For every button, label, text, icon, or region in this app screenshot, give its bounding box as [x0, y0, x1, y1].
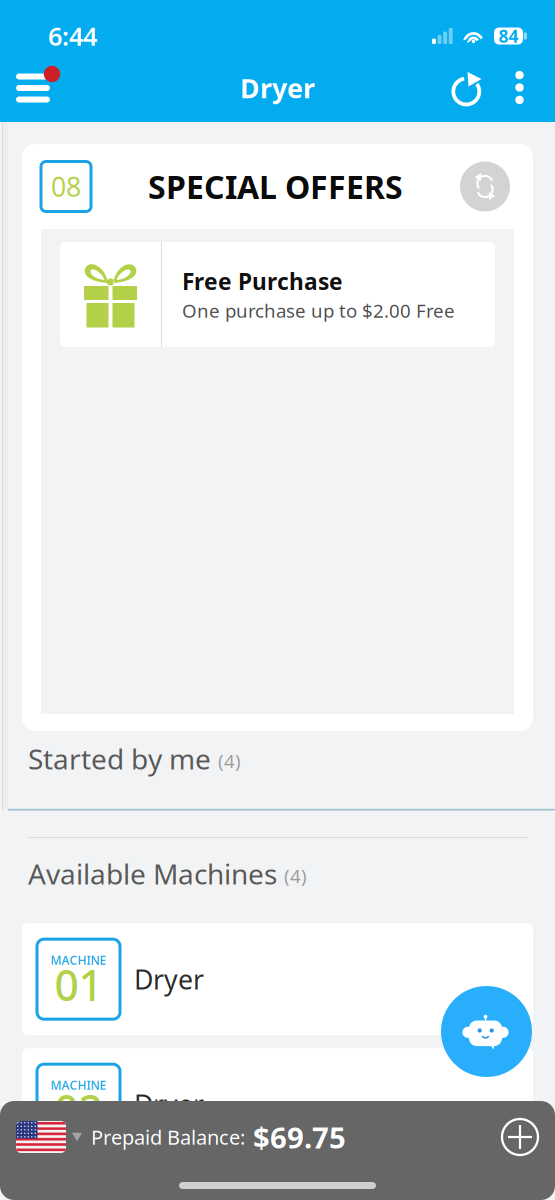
- staticText: One purchase up to $2.00 Free: [182, 298, 455, 323]
- staticText: 01: [54, 956, 102, 1013]
- staticText: SPECIAL OFFERS: [148, 165, 403, 208]
- staticText: MACHINE: [50, 952, 106, 968]
- button[interactable]: Add funds: [490, 1107, 555, 1167]
- staticText: $69.75: [253, 1117, 346, 1156]
- button[interactable]: Refresh: [427, 58, 496, 124]
- button[interactable]: Chat assistant: [441, 986, 532, 1077]
- button[interactable]: Menu: [0, 57, 84, 125]
- button[interactable]: Refresh offers: [460, 161, 533, 211]
- staticText: 08: [51, 169, 81, 204]
- staticText: 02: [54, 1081, 102, 1138]
- staticText: (4): [284, 863, 307, 888]
- staticText: Available Machines: [28, 855, 277, 892]
- staticText: (4): [218, 748, 241, 773]
- button[interactable]: Change country: [0, 1107, 82, 1167]
- staticText: 84: [498, 24, 518, 47]
- button[interactable]: MACHINE: [22, 1048, 533, 1160]
- staticText: Free Purchase: [182, 266, 343, 296]
- staticText: MACHINE: [50, 1077, 106, 1093]
- staticText: Dryer: [134, 1086, 204, 1122]
- staticText: 6:44: [48, 19, 97, 53]
- button[interactable]: More options: [496, 56, 555, 125]
- staticText: Dryer: [134, 961, 204, 997]
- staticText: Dryer: [240, 70, 315, 106]
- button[interactable]: MACHINE: [22, 923, 533, 1035]
- staticText: Prepaid Balance:: [91, 1124, 245, 1150]
- staticText: Started by me: [28, 740, 211, 777]
